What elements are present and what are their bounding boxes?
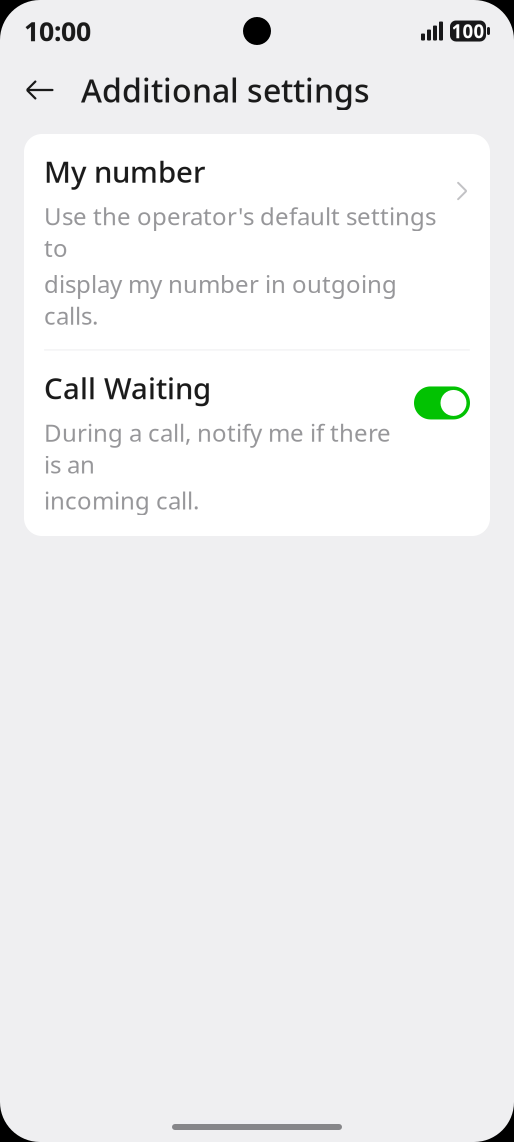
- staticText: 100: [451, 19, 484, 43]
- staticText: 10:00: [24, 13, 91, 49]
- staticText: display my number in outgoing calls.: [44, 268, 397, 331]
- button[interactable]: Call Waiting: [24, 350, 490, 536]
- staticText: Call Waiting: [44, 368, 211, 407]
- staticText: My number: [44, 152, 205, 191]
- staticText: Use the operator's default settings to: [44, 200, 436, 264]
- button[interactable]: My number: [24, 134, 490, 349]
- staticText: incoming call.: [44, 484, 199, 516]
- staticText: During a call, notify me if there is an: [44, 416, 391, 480]
- staticText: Additional settings: [81, 69, 370, 111]
- button[interactable]: Back: [16, 66, 64, 114]
